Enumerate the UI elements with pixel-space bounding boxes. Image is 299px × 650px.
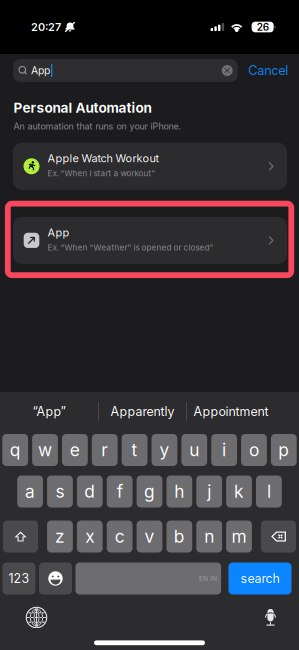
staticText: search — [240, 571, 279, 586]
staticText: z — [55, 526, 65, 547]
staticText: EN IN — [199, 574, 217, 583]
staticText: An automation that runs on your iPhone. — [13, 121, 181, 132]
button[interactable]: l — [256, 475, 282, 507]
staticText: App — [31, 64, 50, 77]
staticText: i — [222, 439, 226, 460]
button[interactable]: o — [241, 434, 267, 466]
staticText: Apparently — [110, 404, 174, 419]
staticText: j — [207, 481, 211, 502]
button[interactable]: y — [151, 434, 177, 466]
button[interactable]: j — [196, 475, 222, 507]
staticText: u — [189, 439, 199, 460]
staticText: s — [55, 481, 64, 502]
staticText: c — [115, 526, 125, 547]
button[interactable]: u — [181, 434, 207, 466]
staticText: Cancel — [248, 63, 288, 78]
staticText: k — [234, 481, 244, 502]
staticText: v — [144, 526, 154, 547]
button[interactable]: e — [62, 434, 88, 466]
button[interactable]: c — [107, 520, 132, 552]
button[interactable]: k — [226, 475, 252, 507]
staticText: e — [70, 439, 80, 460]
button[interactable]: t — [122, 434, 147, 466]
staticText: Ex. “When I start a workout” — [47, 169, 155, 178]
button[interactable]: n — [196, 520, 222, 552]
staticText: x — [85, 526, 94, 547]
staticText: y — [159, 439, 169, 460]
button[interactable]: Cancel — [238, 59, 299, 82]
button[interactable]: z — [47, 520, 73, 552]
staticText: Apple Watch Workout — [47, 152, 159, 165]
button[interactable]: Apple Watch Workout — [13, 143, 287, 190]
staticText: d — [84, 481, 95, 502]
staticText: o — [249, 439, 259, 460]
button[interactable]: Delete — [261, 520, 296, 552]
staticText: a — [25, 481, 35, 502]
button[interactable]: Next keyboard — [17, 602, 55, 632]
button[interactable]: Dictate — [251, 602, 289, 632]
button[interactable]: a — [17, 475, 43, 507]
staticText: r — [101, 439, 108, 460]
staticText: w — [38, 439, 52, 460]
button[interactable]: h — [166, 475, 192, 507]
button[interactable]: space — [75, 562, 221, 594]
button[interactable]: 123 — [2, 562, 35, 594]
staticText: Appointment — [193, 404, 268, 419]
staticText: b — [174, 526, 185, 547]
staticText: q — [10, 439, 21, 460]
staticText: 123 — [8, 571, 29, 586]
staticText: Ex. “When “Weather” is opened or closed” — [47, 243, 213, 252]
staticText: g — [144, 481, 155, 502]
button[interactable]: d — [77, 475, 103, 507]
staticText: App — [47, 226, 69, 239]
staticText: f — [117, 481, 123, 502]
staticText: 26 — [257, 21, 269, 33]
staticText: “App” — [32, 404, 65, 419]
staticText: 20:27 — [31, 20, 61, 34]
button[interactable]: v — [137, 520, 162, 552]
button[interactable]: r — [92, 434, 118, 466]
button[interactable]: w — [32, 434, 58, 466]
staticText: m — [231, 526, 246, 547]
button[interactable]: Apparently — [99, 392, 186, 431]
staticText: l — [267, 481, 271, 502]
button[interactable]: b — [166, 520, 192, 552]
button[interactable]: Emoji — [39, 562, 72, 594]
button[interactable]: Appointment — [187, 392, 275, 431]
staticText: h — [174, 481, 184, 502]
button[interactable]: Clear text — [219, 65, 238, 76]
staticText: p — [278, 439, 289, 460]
staticText: t — [132, 439, 138, 460]
staticText: Personal Automation — [13, 99, 151, 116]
button[interactable]: search — [228, 562, 291, 594]
button[interactable]: f — [107, 475, 133, 507]
button[interactable]: Shift — [3, 520, 38, 552]
button[interactable]: x — [77, 520, 103, 552]
button[interactable]: p — [271, 434, 297, 466]
staticText: n — [204, 526, 214, 547]
button[interactable]: m — [226, 520, 252, 552]
button[interactable]: App — [13, 217, 287, 264]
button[interactable]: “App” — [0, 392, 98, 431]
button[interactable]: i — [211, 434, 237, 466]
button[interactable]: q — [2, 434, 28, 466]
button[interactable]: s — [47, 475, 73, 507]
button[interactable]: g — [137, 475, 162, 507]
